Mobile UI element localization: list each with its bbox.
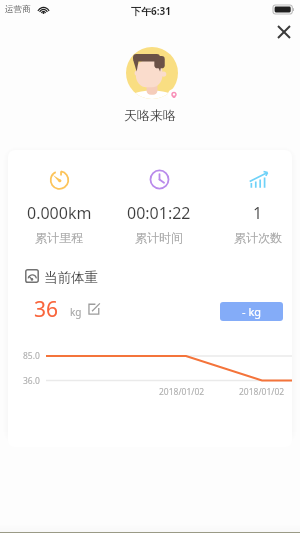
staticText: 2018/01/02 xyxy=(239,386,285,398)
staticText: 下午6:31 xyxy=(131,4,171,18)
button[interactable]: Close xyxy=(268,16,299,47)
staticText: 天咯来咯 xyxy=(124,107,176,123)
staticText: kg xyxy=(70,305,82,319)
staticText: 累计时间 xyxy=(135,230,183,245)
staticText: 85.0 xyxy=(23,350,40,362)
button[interactable]: - kg xyxy=(220,302,283,321)
staticText: 累计里程 xyxy=(35,230,83,245)
staticText: 当前体重 xyxy=(44,269,98,286)
button[interactable]: Edit weight xyxy=(87,302,101,316)
staticText: 36 xyxy=(34,295,59,324)
staticText: 0.000km xyxy=(27,202,92,224)
staticText: 1 xyxy=(253,202,263,224)
staticText: 累计次数 xyxy=(234,230,282,245)
staticText: - kg xyxy=(242,304,262,319)
staticText: 运营商 xyxy=(5,4,31,15)
staticText: 36.0 xyxy=(23,375,40,387)
staticText: 00:01:22 xyxy=(127,202,191,224)
staticText: 2018/01/02 xyxy=(159,386,205,398)
